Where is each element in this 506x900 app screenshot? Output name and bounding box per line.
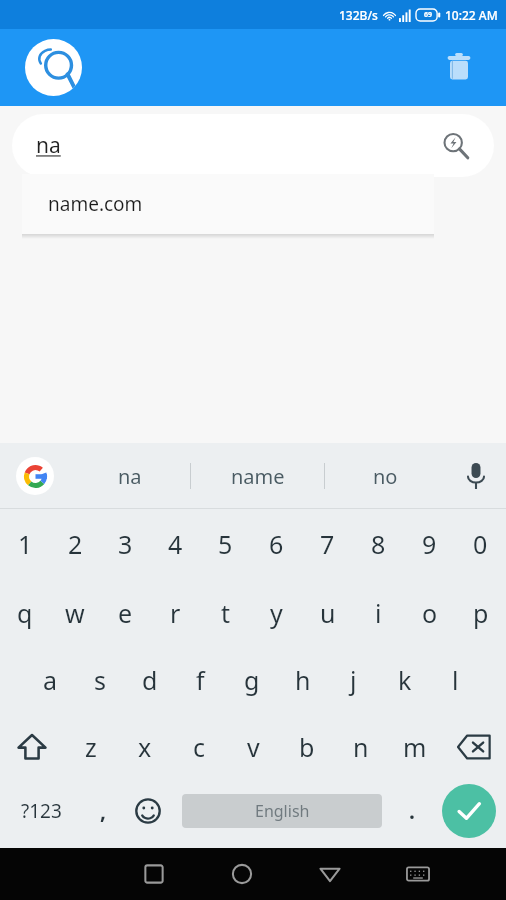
staticText: r (170, 596, 181, 630)
staticText: v (247, 730, 260, 764)
button[interactable]: 1 (0, 509, 50, 579)
button[interactable]: p (455, 579, 506, 646)
staticText: name (231, 463, 285, 490)
button[interactable]: Back (304, 848, 356, 900)
staticText: m (403, 730, 427, 764)
button[interactable]: Done (432, 780, 506, 842)
button[interactable]: 8 (353, 509, 404, 579)
staticText: no (373, 463, 398, 490)
button[interactable]: Emoji (124, 780, 172, 842)
staticText: k (398, 663, 412, 697)
staticText: x (138, 730, 152, 764)
button[interactable]: l (430, 646, 481, 713)
button[interactable]: , (82, 780, 124, 842)
button[interactable]: 4 (150, 509, 200, 579)
button[interactable]: h (277, 646, 328, 713)
staticText: 10:22 AM (445, 7, 498, 23)
button[interactable]: i (353, 579, 404, 646)
button[interactable]: x (118, 713, 172, 780)
staticText: h (295, 663, 311, 697)
button[interactable]: English (182, 794, 382, 828)
staticText: na (36, 131, 61, 160)
button[interactable]: q (0, 579, 50, 646)
staticText: c (193, 730, 206, 764)
button[interactable]: na (70, 443, 190, 509)
button[interactable]: t (200, 579, 251, 646)
button[interactable]: . (392, 780, 432, 842)
staticText: q (17, 596, 33, 630)
staticText: 69 (424, 10, 433, 20)
staticText: 132B/s (339, 7, 378, 23)
staticText: d (142, 663, 158, 697)
staticText: o (422, 596, 438, 630)
button[interactable]: 5 (200, 509, 251, 579)
staticText: n (353, 730, 369, 764)
staticText: 7 (320, 527, 335, 561)
button[interactable]: u (302, 579, 353, 646)
button[interactable]: g (226, 646, 277, 713)
button[interactable]: 0 (455, 509, 506, 579)
button[interactable]: z (64, 713, 118, 780)
button[interactable]: e (100, 579, 150, 646)
button[interactable]: w (50, 579, 100, 646)
button[interactable]: Delete history (436, 45, 482, 91)
staticText: e (118, 596, 133, 630)
button[interactable]: v (226, 713, 280, 780)
staticText: b (299, 730, 315, 764)
button[interactable]: 9 (404, 509, 455, 579)
button[interactable]: ?123 (0, 780, 82, 842)
staticText: ?123 (21, 798, 62, 824)
button[interactable]: no (325, 443, 446, 509)
button[interactable]: Quick search (436, 126, 476, 166)
staticText: w (65, 596, 85, 630)
staticText: 3 (118, 527, 133, 561)
button[interactable]: b (280, 713, 334, 780)
button[interactable]: Backspace (442, 713, 506, 780)
staticText: l (452, 663, 459, 697)
button[interactable]: Home (216, 848, 268, 900)
staticText: u (320, 596, 336, 630)
button[interactable]: k (379, 646, 430, 713)
staticText: 4 (168, 527, 183, 561)
button[interactable]: Google (0, 443, 70, 509)
button[interactable]: y (251, 579, 302, 646)
staticText: y (270, 596, 283, 630)
staticText: g (244, 663, 260, 697)
staticText: name.com (48, 191, 143, 217)
staticText: 5 (218, 527, 233, 561)
button[interactable]: na (12, 114, 494, 177)
staticText: p (473, 596, 489, 630)
button[interactable]: 7 (302, 509, 353, 579)
button[interactable]: n (334, 713, 388, 780)
staticText: . (409, 797, 415, 826)
button[interactable]: Recents (128, 848, 180, 900)
staticText: 9 (422, 527, 437, 561)
button[interactable]: s (75, 646, 125, 713)
staticText: t (221, 596, 231, 630)
button[interactable]: 3 (100, 509, 150, 579)
button[interactable]: a (25, 646, 75, 713)
button[interactable]: Shift (0, 713, 64, 780)
staticText: f (196, 663, 205, 697)
button[interactable]: Voice input (446, 443, 506, 509)
staticText: j (350, 663, 357, 697)
staticText: , (100, 797, 106, 826)
staticText: a (43, 663, 58, 697)
button[interactable]: o (404, 579, 455, 646)
button[interactable]: r (150, 579, 200, 646)
button[interactable]: j (328, 646, 379, 713)
button[interactable]: c (172, 713, 226, 780)
button[interactable]: 2 (50, 509, 100, 579)
button[interactable]: Hide keyboard (392, 848, 444, 900)
staticText: 8 (371, 527, 386, 561)
button[interactable]: WhoIs logo (25, 39, 82, 96)
button[interactable]: name.com (22, 174, 434, 234)
staticText: na (118, 463, 142, 490)
button[interactable]: name (191, 443, 324, 509)
button[interactable]: d (125, 646, 175, 713)
staticText: i (375, 596, 382, 630)
button[interactable]: 6 (251, 509, 302, 579)
button[interactable]: f (175, 646, 226, 713)
button[interactable]: m (388, 713, 442, 780)
staticText: s (94, 663, 106, 697)
